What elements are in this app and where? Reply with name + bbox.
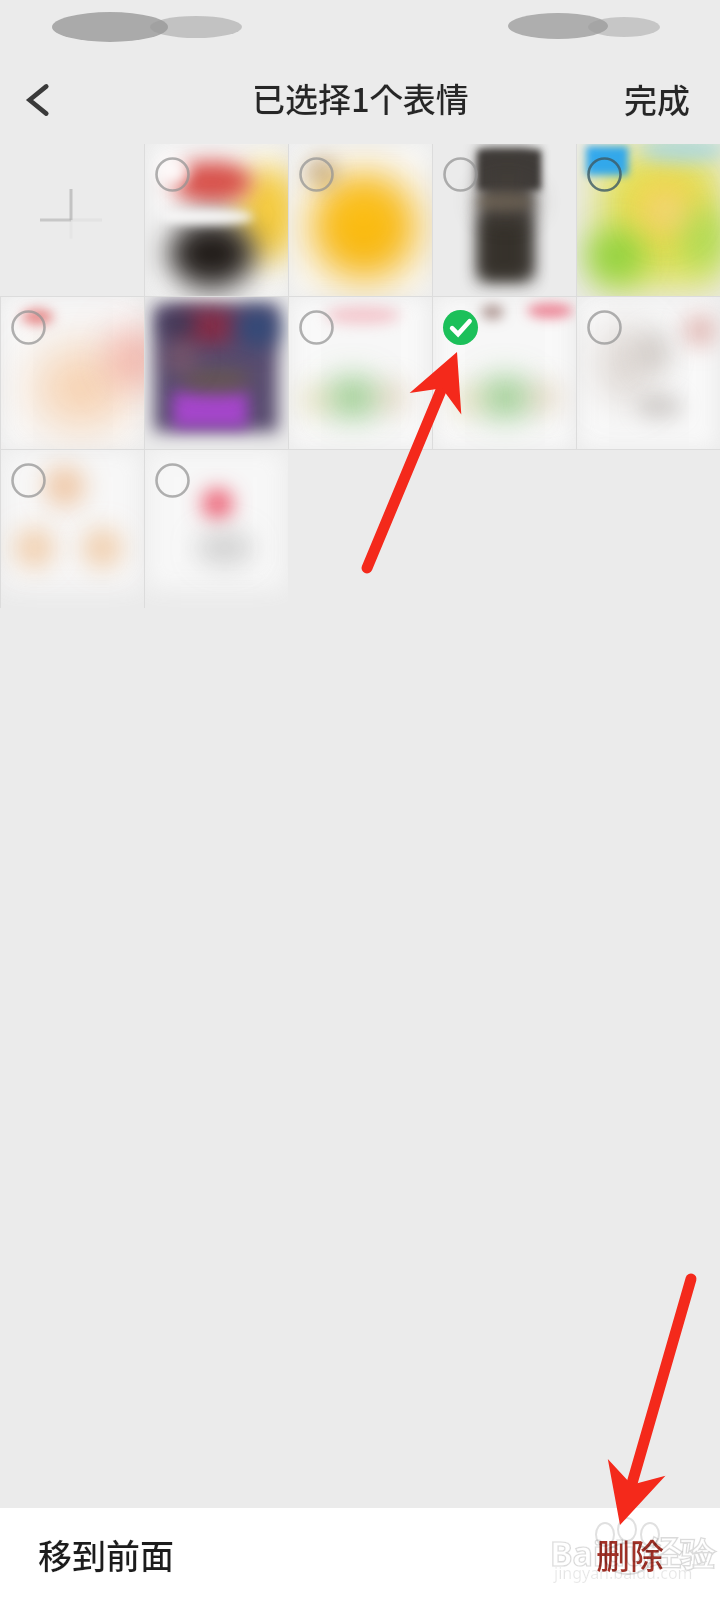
button[interactable]: Sticker xyxy=(288,144,432,296)
button[interactable]: Sticker xyxy=(144,450,288,608)
button[interactable]: Sticker xyxy=(288,297,432,449)
button[interactable]: Sticker xyxy=(576,297,720,449)
button[interactable]: Sticker xyxy=(144,297,288,449)
button[interactable]: Sticker xyxy=(0,297,144,449)
button[interactable]: Back xyxy=(0,62,82,144)
staticText: 完成 xyxy=(624,75,690,123)
staticText: 移到前面 xyxy=(38,1530,174,1579)
staticText: 删除 xyxy=(596,1530,664,1579)
button[interactable]: Sticker xyxy=(576,144,720,296)
staticText: 已选择1个表情 xyxy=(252,74,469,122)
button[interactable]: Add sticker xyxy=(0,144,144,296)
button[interactable]: Sticker xyxy=(432,144,576,296)
button[interactable]: 删除 xyxy=(596,1530,664,1579)
button[interactable]: Sticker xyxy=(432,297,576,449)
button[interactable]: 完成 xyxy=(624,75,690,123)
button[interactable]: Sticker xyxy=(144,144,288,296)
button[interactable]: Sticker xyxy=(0,450,144,608)
staticText: Baidu经验 xyxy=(550,1530,715,1576)
staticText: jingyan.baidu.com xyxy=(554,1562,693,1584)
button[interactable]: 移到前面 xyxy=(38,1530,174,1579)
